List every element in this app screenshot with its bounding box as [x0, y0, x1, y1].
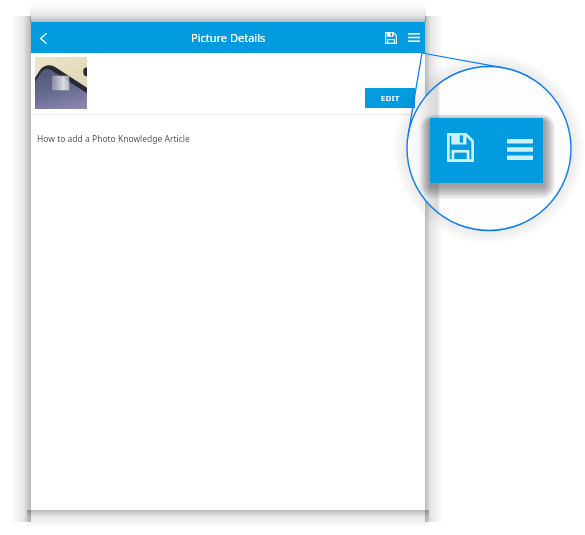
button[interactable]: Menu: [402, 26, 425, 49]
button[interactable]: EDIT: [365, 88, 415, 108]
staticText: Picture Details: [191, 30, 266, 45]
staticText: How to add a Photo Knowledge Article: [37, 133, 190, 145]
button[interactable]: Save: [379, 26, 402, 49]
button[interactable]: Back: [29, 24, 57, 52]
staticText: EDIT: [381, 93, 400, 103]
